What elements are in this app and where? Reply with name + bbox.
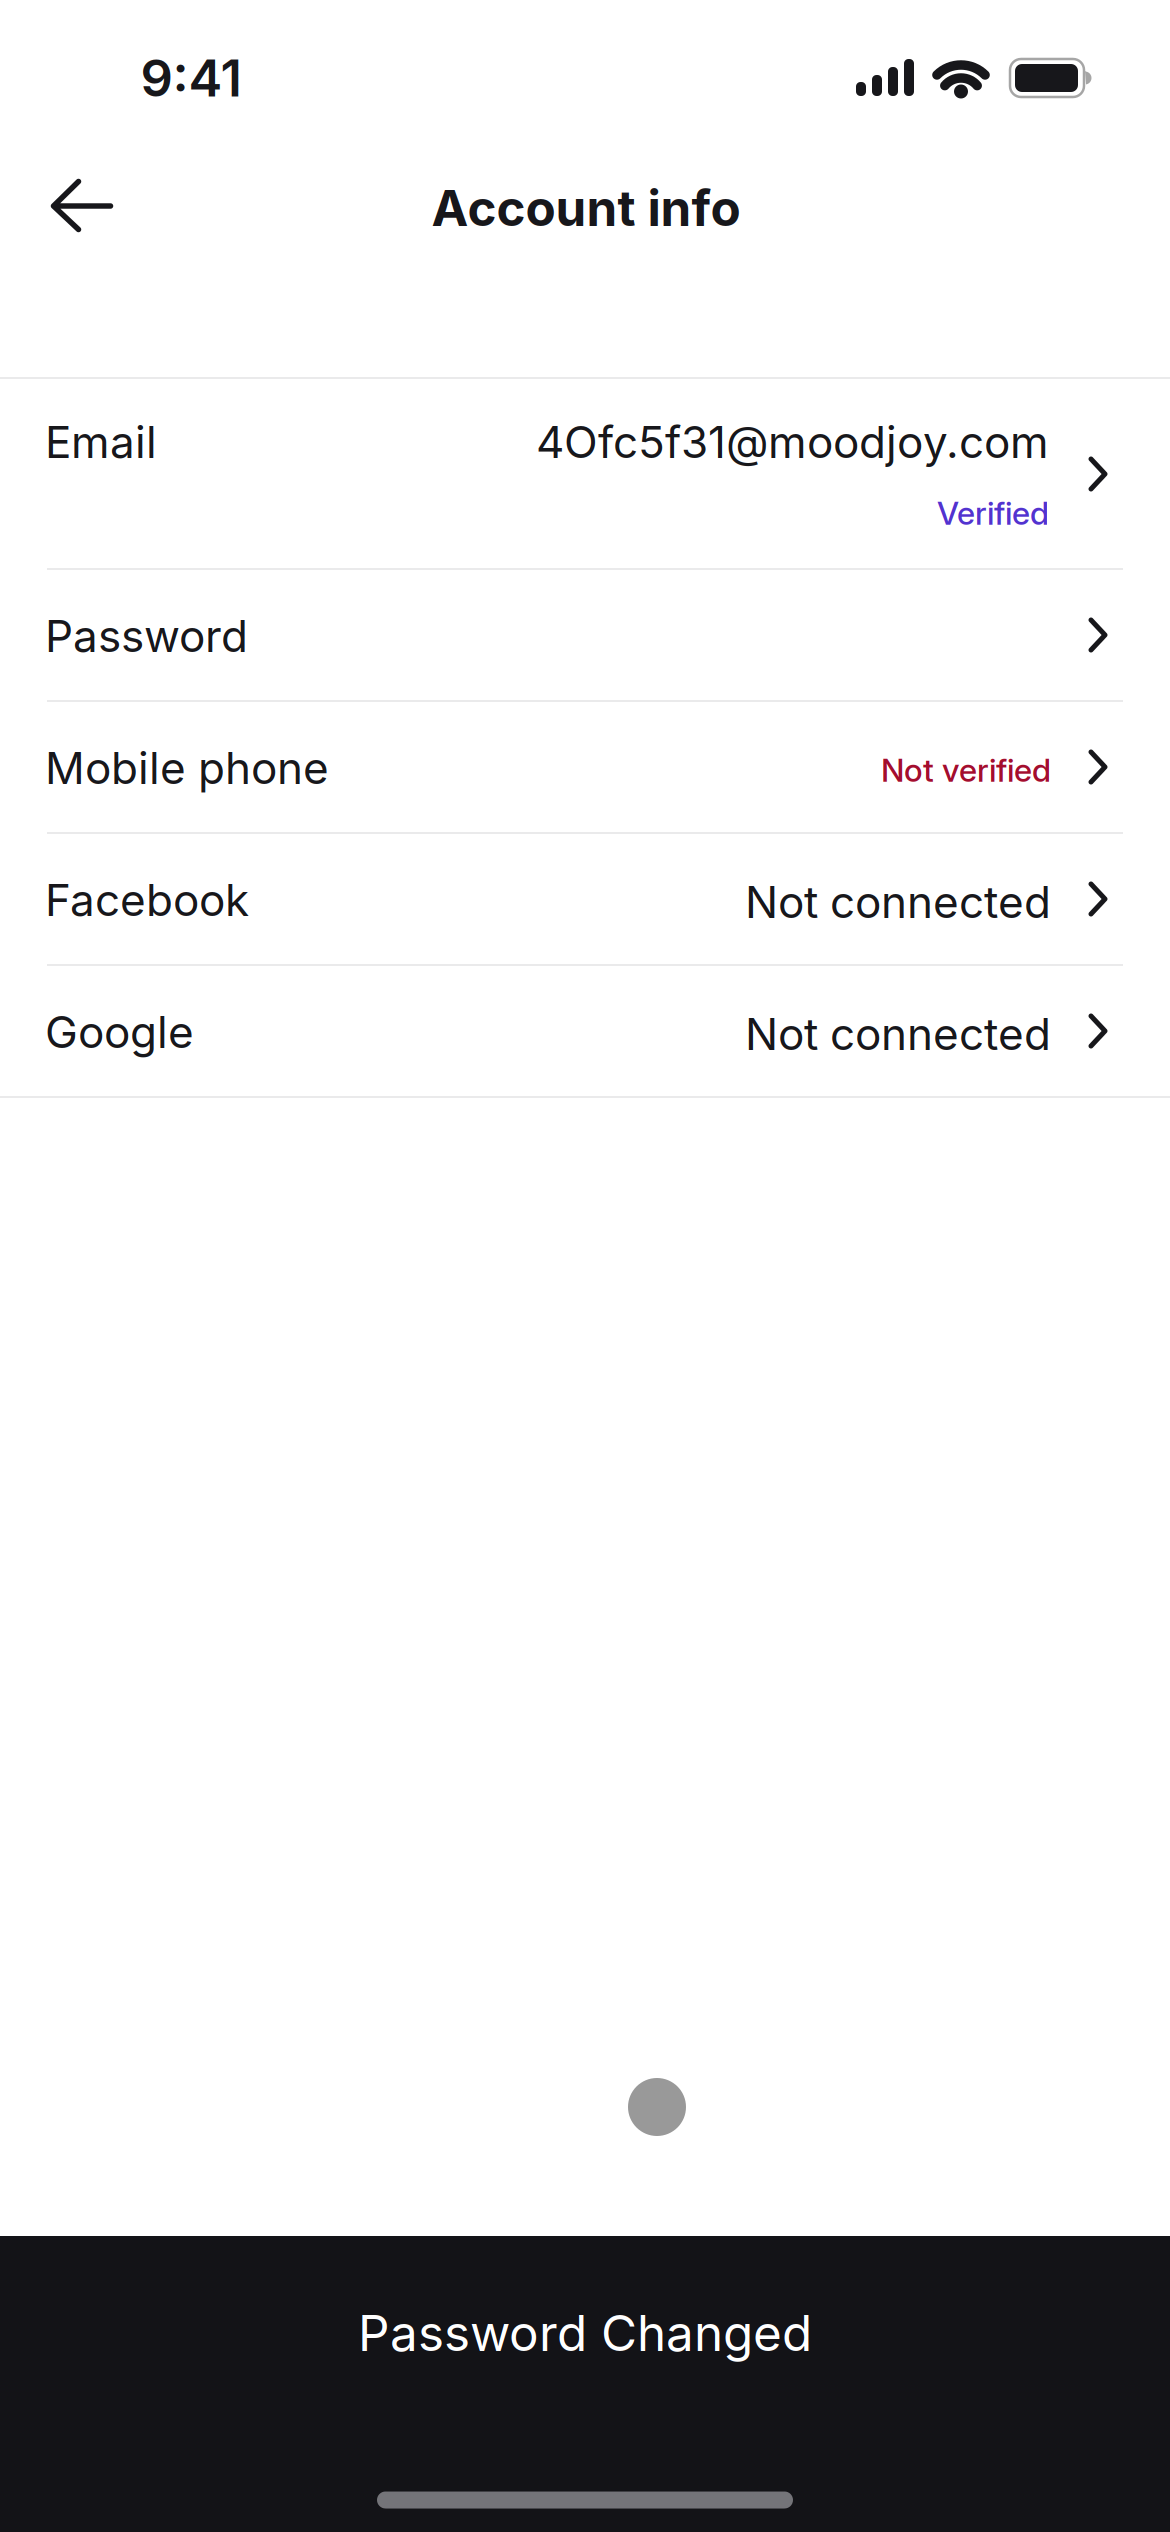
staticText: Verified [937,494,1049,532]
staticText: Mobile phone [45,742,329,794]
button[interactable]: Password [0,570,1170,700]
button[interactable]: Mobile phone [0,702,1170,832]
staticText: Facebook [45,874,249,926]
button[interactable]: Back [29,156,133,256]
button[interactable]: Email [0,379,1170,567]
button[interactable]: Facebook [0,834,1170,964]
staticText: Not verified [881,751,1051,789]
staticText: Google [45,1006,194,1058]
staticText: Not connected [745,876,1051,928]
button[interactable]: Google [0,966,1170,1096]
staticText: Not connected [745,1008,1051,1060]
staticText: Email [45,416,157,468]
staticText: Account info [431,179,740,237]
staticText: 4Ofc5f31@moodjoy.com [536,416,1049,468]
staticText: Password Changed [358,2304,812,2362]
staticText: Password [45,610,248,662]
staticText: 9:41 [140,48,241,108]
